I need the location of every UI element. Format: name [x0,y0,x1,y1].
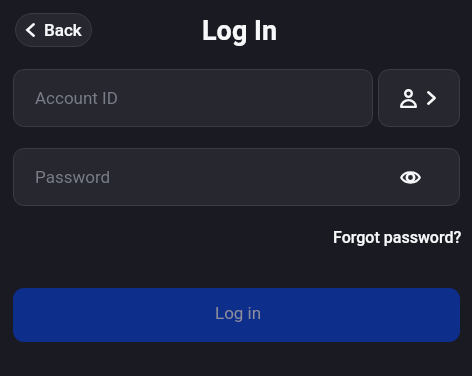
staticText: Log In [202,15,278,47]
button[interactable]: Back [15,13,92,47]
staticText: Account ID [35,88,118,108]
staticText: Password [35,167,111,187]
staticText: Log in [215,303,262,323]
button[interactable]: Log in [13,288,460,342]
button[interactable]: Select account [378,69,460,127]
button[interactable]: Password [13,148,460,206]
button[interactable]: Forgot password? [333,228,462,247]
staticText: Back [44,20,82,40]
button[interactable]: Account ID [13,69,373,127]
button[interactable]: Show password [388,155,432,199]
